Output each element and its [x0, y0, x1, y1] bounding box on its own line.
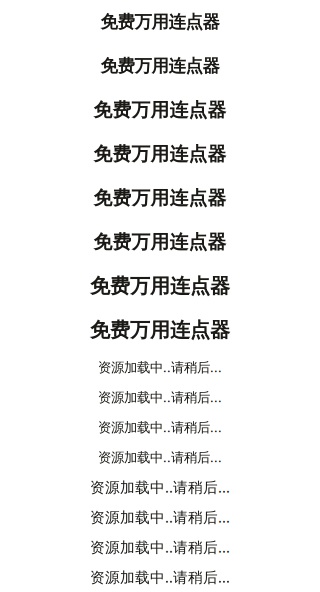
- staticText: 资源加载中..请稍后...: [90, 537, 230, 557]
- staticText: 资源加载中..请稍后...: [98, 448, 222, 466]
- staticText: 免费万用连点器: [93, 186, 226, 209]
- staticText: 资源加载中..请稍后...: [90, 477, 230, 497]
- staticText: 免费万用连点器: [90, 318, 230, 342]
- staticText: 免费万用连点器: [93, 98, 226, 121]
- staticText: 免费万用连点器: [93, 230, 226, 253]
- staticText: 免费万用连点器: [100, 55, 219, 77]
- staticText: 免费万用连点器: [100, 11, 219, 33]
- staticText: 资源加载中..请稍后...: [90, 507, 230, 527]
- staticText: 资源加载中..请稍后...: [98, 358, 222, 376]
- staticText: 免费万用连点器: [93, 142, 226, 165]
- staticText: 免费万用连点器: [90, 274, 230, 298]
- staticText: 资源加载中..请稍后...: [98, 388, 222, 406]
- staticText: 资源加载中..请稍后...: [90, 567, 230, 587]
- staticText: 资源加载中..请稍后...: [98, 418, 222, 436]
